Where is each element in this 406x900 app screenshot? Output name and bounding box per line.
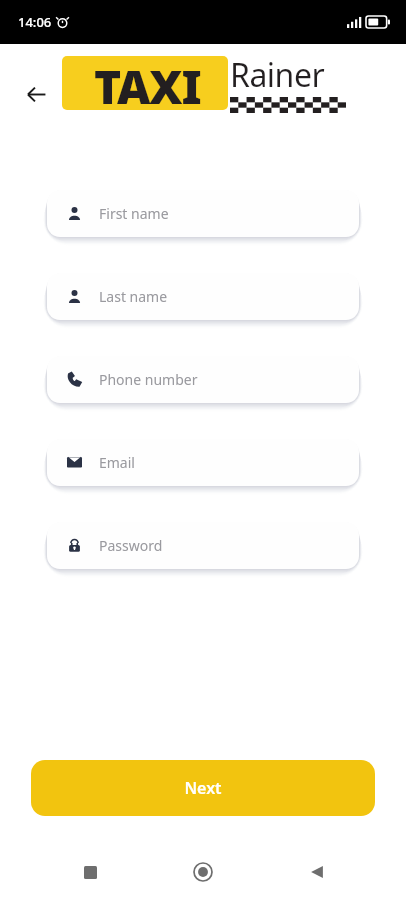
staticText: Password	[99, 536, 163, 555]
staticText: TAXI	[94, 56, 201, 109]
button[interactable]: Next	[31, 760, 375, 816]
staticText: Rainer	[230, 53, 325, 97]
button[interactable]: Recents	[66, 848, 114, 896]
button[interactable]: Phone number	[47, 356, 359, 403]
staticText: Last name	[99, 287, 168, 306]
staticText: 14:06	[18, 13, 52, 31]
button[interactable]: Back	[293, 848, 341, 896]
button[interactable]: Last name	[47, 273, 359, 320]
button[interactable]: Password	[47, 522, 359, 569]
button[interactable]: Home	[179, 848, 227, 896]
staticText: Email	[99, 453, 135, 472]
staticText: Phone number	[99, 370, 198, 389]
staticText: Next	[184, 777, 222, 799]
button[interactable]: Back	[16, 74, 56, 114]
button[interactable]: Email	[47, 439, 359, 486]
button[interactable]: First name	[47, 190, 359, 237]
staticText: First name	[99, 204, 169, 223]
